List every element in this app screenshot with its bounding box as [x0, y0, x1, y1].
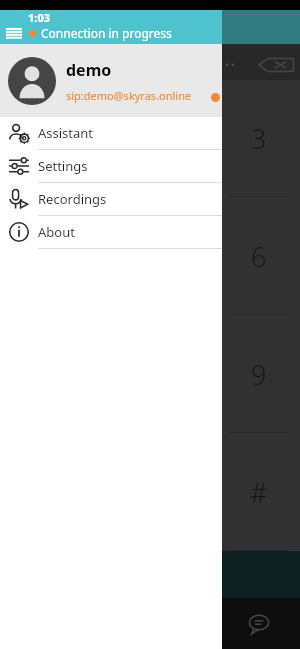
staticText: Assistant [38, 124, 94, 142]
staticText: Connection in progress [41, 25, 172, 41]
button[interactable]: Open navigation menu [4, 23, 172, 43]
button[interactable]: Assistant [0, 117, 222, 150]
button[interactable]: 9 [218, 315, 300, 433]
staticText: 6 [251, 238, 267, 275]
staticText: 3 [251, 120, 267, 157]
staticText: sip:demo@skyras.online [66, 88, 192, 103]
button[interactable]: Settings [0, 150, 222, 183]
button[interactable]: About [0, 216, 222, 249]
button[interactable]: Chat [218, 598, 300, 649]
staticText: # [250, 474, 268, 511]
button[interactable]: 3 [218, 80, 300, 197]
button[interactable]: Recordings [0, 183, 222, 216]
button[interactable]: demo [8, 44, 222, 117]
button[interactable]: 6 [218, 197, 300, 315]
staticText: Recordings [38, 190, 107, 208]
other: Open navigation menu [4, 23, 24, 43]
staticText: About [38, 223, 75, 241]
staticText: demo [66, 59, 112, 81]
staticText: 1:03 [28, 10, 50, 25]
button[interactable]: # [218, 433, 300, 551]
staticText: Settings [38, 157, 88, 175]
staticText: 9 [251, 356, 267, 393]
